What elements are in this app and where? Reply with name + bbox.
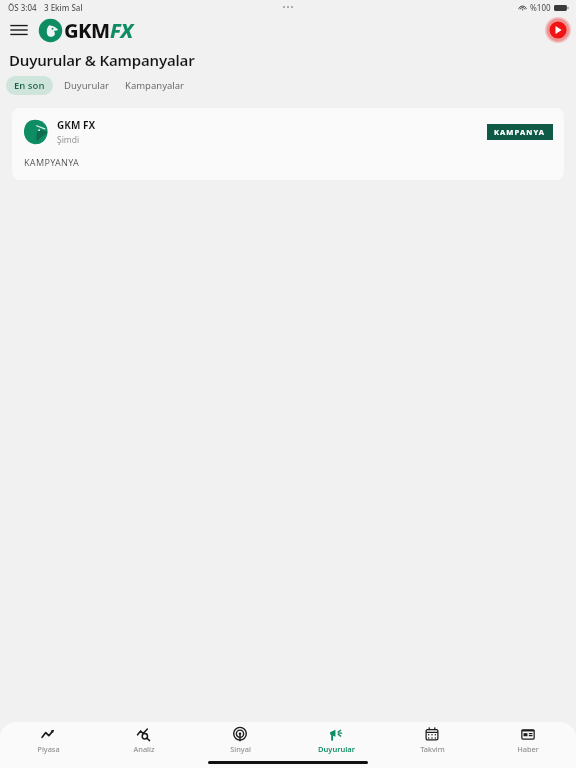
staticText: Kampanyalar xyxy=(125,79,185,92)
staticText: KAMPYANYA xyxy=(24,156,80,168)
staticText: ÖS 3:04 xyxy=(8,2,37,13)
staticText: Duyurular & Kampanyalar xyxy=(9,50,195,70)
button[interactable]: En son xyxy=(6,76,53,95)
staticText: KAMPANYA xyxy=(494,127,546,137)
staticText: Analiz xyxy=(133,744,155,754)
button[interactable]: Haber xyxy=(480,727,576,768)
staticText: Piyasa xyxy=(37,744,60,754)
staticText: Haber xyxy=(517,744,539,754)
button[interactable]: KAMPANYA xyxy=(487,124,553,140)
button[interactable]: Analiz xyxy=(96,727,192,768)
staticText: GKM xyxy=(64,17,110,44)
button[interactable]: Canlı yayın xyxy=(545,17,571,43)
staticText: FX xyxy=(110,17,133,44)
button[interactable]: Sinyal xyxy=(192,727,288,768)
button[interactable]: Menu xyxy=(4,15,34,45)
button[interactable]: Kampanyalar xyxy=(119,76,191,95)
staticText: Takvim xyxy=(420,744,445,754)
staticText: %100 xyxy=(530,2,551,13)
button[interactable]: Piyasa xyxy=(0,727,96,768)
staticText: Sinyal xyxy=(230,744,251,754)
button[interactable]: Takvim xyxy=(384,727,480,768)
staticText: Duyurular xyxy=(318,744,355,754)
staticText: GKM FX xyxy=(57,118,96,132)
button[interactable]: Duyurular xyxy=(288,727,384,768)
staticText: En son xyxy=(14,79,45,92)
staticText: Şimdi xyxy=(57,134,80,146)
staticText: 3 Ekim Sal xyxy=(44,2,83,13)
button[interactable]: GKM FX xyxy=(12,108,564,180)
button[interactable]: Duyurular xyxy=(58,76,116,95)
staticText: Duyurular xyxy=(64,79,110,92)
